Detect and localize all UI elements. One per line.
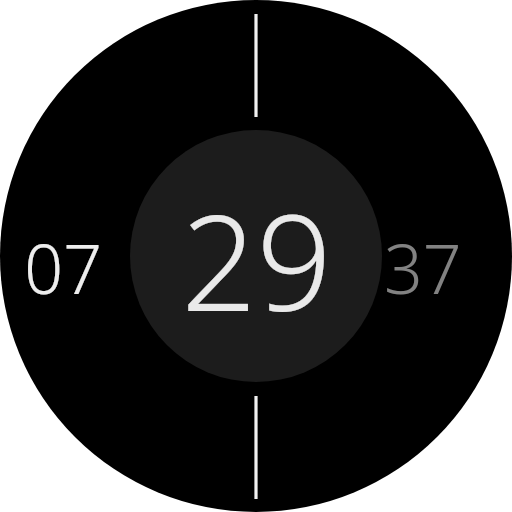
staticText: 29 [181,170,332,350]
button[interactable]: Previous minute 07 [0,221,102,307]
button[interactable]: Current minute 29 [130,130,382,382]
button[interactable]: Next minute 37 [384,221,500,307]
staticText: 37 [384,221,462,307]
staticText: 07 [24,221,102,307]
button[interactable]: Previous minute 07 [0,0,512,512]
